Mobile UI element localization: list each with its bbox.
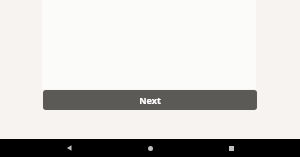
button[interactable]: Next	[43, 90, 257, 110]
staticText: Next	[139, 94, 161, 106]
button[interactable]: Back	[57, 139, 81, 157]
button[interactable]: Recent apps	[219, 139, 243, 157]
button[interactable]: Home	[138, 139, 162, 157]
